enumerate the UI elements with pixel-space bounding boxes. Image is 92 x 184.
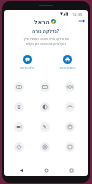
button[interactable]: Back [17, 166, 25, 174]
button[interactable]: Power [14, 142, 24, 152]
button[interactable]: Light [14, 122, 24, 132]
staticText: אם נדלקה נורית אזהרה במכשיר שלך ניתן לבד… [23, 37, 69, 46]
button[interactable]: Order technician [59, 55, 76, 70]
button[interactable]: Battery [40, 82, 50, 92]
button[interactable]: Home [42, 166, 50, 174]
button[interactable]: Engine [14, 82, 24, 92]
staticText: הראל [34, 18, 50, 25]
button[interactable]: Recents [67, 166, 75, 174]
button[interactable]: Seatbelt [65, 142, 75, 152]
button[interactable]: הראל [34, 18, 56, 25]
staticText: צ'אט איתנו [20, 66, 34, 70]
button[interactable]: ABS [40, 142, 50, 152]
button[interactable]: Temperature [40, 102, 50, 112]
button[interactable]: Brakes [65, 82, 75, 92]
button[interactable]: Washer [65, 102, 75, 112]
button[interactable]: Oil [14, 102, 24, 112]
button[interactable]: Airbag [65, 122, 75, 132]
button[interactable]: Back [78, 17, 86, 25]
staticText: הזמנת טכנאי [59, 66, 76, 70]
button[interactable]: Service [40, 122, 50, 132]
staticText: נדלקה נורה? [32, 28, 60, 34]
button[interactable]: Chat [20, 55, 34, 70]
staticText: 12:30 [72, 12, 83, 17]
